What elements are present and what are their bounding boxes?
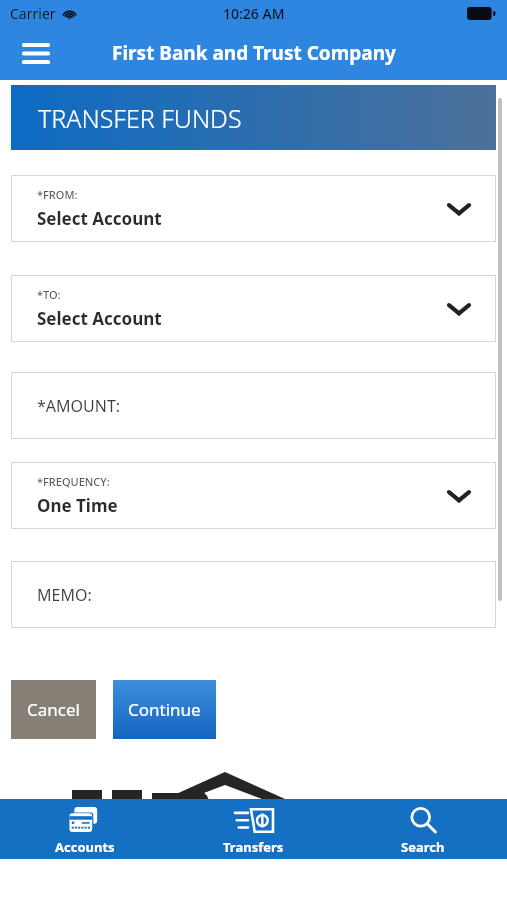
staticText: First Bank and Trust Company bbox=[112, 40, 396, 66]
staticText: MEMO: bbox=[37, 584, 92, 606]
button[interactable]: *TO: bbox=[11, 275, 496, 342]
button[interactable]: Search bbox=[338, 799, 507, 859]
staticText: Accounts bbox=[55, 838, 115, 856]
staticText: Carrier bbox=[10, 4, 56, 23]
staticText: 10:26 AM bbox=[223, 4, 285, 23]
button[interactable]: Transfers bbox=[169, 799, 338, 859]
staticText: *FROM: bbox=[37, 187, 78, 202]
button[interactable]: Continue bbox=[113, 680, 216, 739]
staticText: Transfers bbox=[223, 838, 284, 856]
button[interactable]: *AMOUNT: bbox=[11, 372, 496, 439]
button[interactable]: *FROM: bbox=[11, 175, 496, 242]
button[interactable]: Cancel bbox=[11, 680, 96, 739]
button[interactable]: Menu bbox=[16, 33, 56, 73]
staticText: Select Account bbox=[37, 307, 162, 330]
staticText: *TO: bbox=[37, 287, 61, 302]
button[interactable]: *FREQUENCY: bbox=[11, 462, 496, 529]
staticText: *AMOUNT: bbox=[37, 395, 121, 417]
button[interactable]: MEMO: bbox=[11, 561, 496, 628]
staticText: TRANSFER FUNDS bbox=[38, 101, 242, 135]
staticText: Cancel bbox=[27, 698, 80, 721]
button[interactable]: Accounts bbox=[0, 799, 169, 859]
staticText: Search bbox=[401, 838, 445, 856]
staticText: One Time bbox=[37, 494, 118, 517]
staticText: Continue bbox=[128, 698, 201, 721]
staticText: Select Account bbox=[37, 207, 162, 230]
staticText: *FREQUENCY: bbox=[37, 474, 110, 489]
button[interactable]: TRANSFER FUNDS bbox=[11, 85, 496, 150]
